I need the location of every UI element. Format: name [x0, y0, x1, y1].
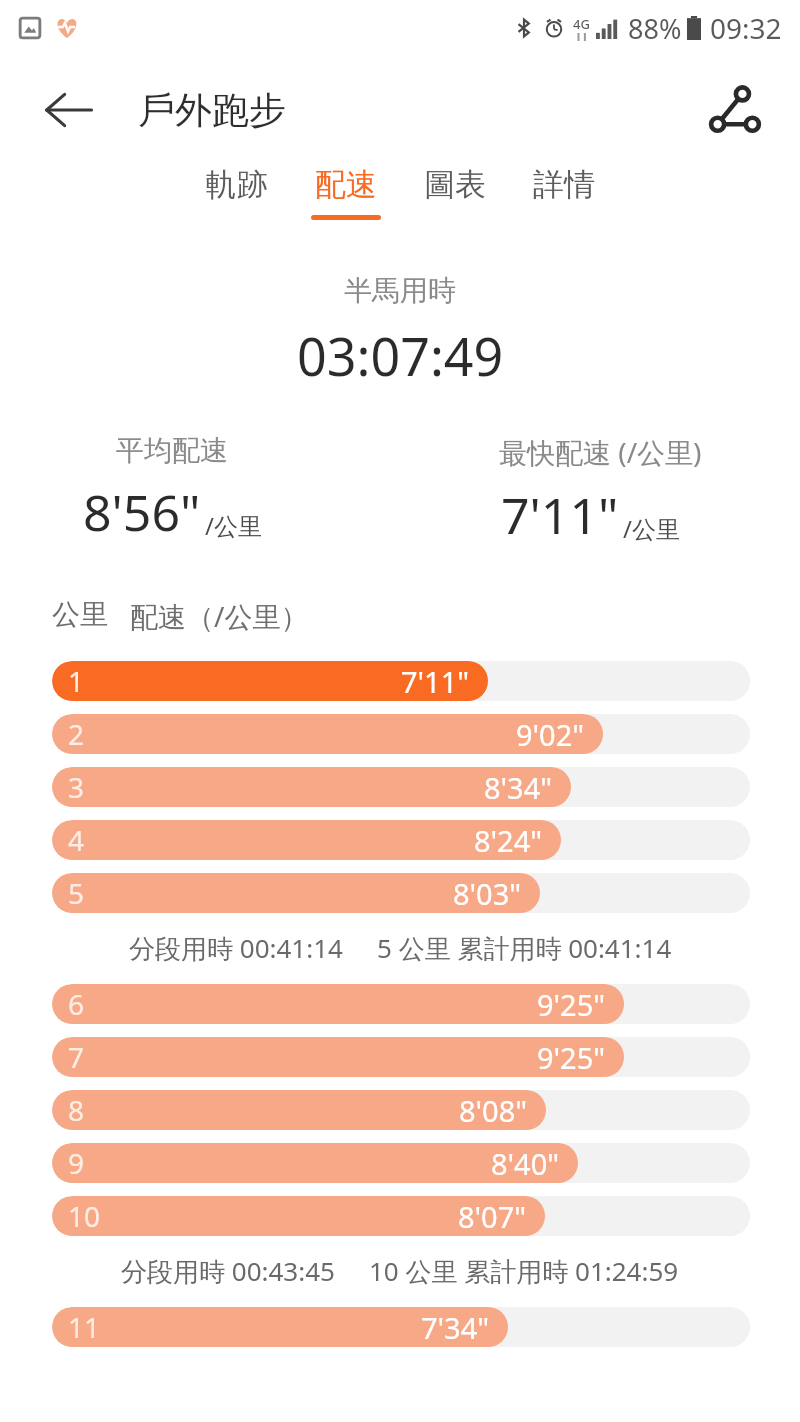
staticText: 5 公里 累計用時 00:41:14: [377, 930, 672, 966]
staticText: 圖表: [424, 165, 486, 204]
button[interactable]: Back: [40, 82, 96, 138]
staticText: 7'11": [401, 662, 470, 701]
button[interactable]: 4: [0, 813, 800, 866]
staticText: 配速: [315, 165, 377, 204]
staticText: 1: [68, 662, 85, 700]
staticText: 7: [68, 1038, 85, 1076]
staticText: 9'25": [537, 1038, 606, 1077]
button[interactable]: 1: [0, 654, 800, 707]
button[interactable]: 7: [0, 1030, 800, 1083]
button[interactable]: Share: [704, 79, 766, 141]
staticText: 8'07": [458, 1197, 527, 1236]
staticText: 10: [68, 1197, 101, 1235]
staticText: 半馬用時: [344, 273, 456, 308]
staticText: 8'40": [491, 1144, 560, 1183]
staticText: 8'56": [83, 478, 201, 546]
staticText: 5: [68, 874, 85, 912]
button[interactable]: 軌跡: [182, 165, 291, 215]
button[interactable]: 10: [0, 1189, 800, 1242]
staticText: 平均配速: [116, 433, 228, 468]
button[interactable]: 11: [0, 1300, 800, 1353]
staticText: 3: [68, 768, 85, 806]
staticText: 8'24": [474, 821, 543, 860]
staticText: 8'03": [453, 874, 522, 913]
staticText: 8'08": [459, 1091, 528, 1130]
staticText: /公里: [205, 509, 262, 542]
staticText: 9: [68, 1144, 85, 1182]
staticText: 2: [68, 715, 85, 753]
staticText: 6: [68, 985, 85, 1023]
staticText: 分段用時 00:43:45: [121, 1253, 335, 1289]
button[interactable]: 圖表: [400, 165, 509, 215]
button[interactable]: 5: [0, 866, 800, 919]
staticText: 軌跡: [206, 165, 268, 204]
staticText: 8'34": [484, 768, 553, 807]
staticText: 9'02": [516, 715, 585, 754]
button[interactable]: 配速: [291, 165, 400, 220]
button[interactable]: 3: [0, 760, 800, 813]
staticText: 分段用時 00:41:14: [129, 930, 343, 966]
staticText: 4G: [573, 15, 590, 33]
staticText: 8: [68, 1091, 85, 1129]
staticText: 戶外跑步: [138, 87, 286, 134]
staticText: 88%: [628, 10, 682, 47]
staticText: 09:32: [710, 9, 782, 47]
staticText: 7'34": [421, 1308, 490, 1347]
button[interactable]: 詳情: [509, 165, 618, 215]
staticText: /公里: [623, 512, 680, 545]
button[interactable]: 6: [0, 977, 800, 1030]
staticText: 公里: [52, 597, 108, 632]
staticText: 9'25": [537, 985, 606, 1024]
staticText: 11: [68, 1308, 101, 1346]
staticText: 03:07:49: [297, 320, 504, 391]
button[interactable]: 9: [0, 1136, 800, 1189]
staticText: 7'11": [501, 481, 619, 549]
staticText: 10 公里 累計用時 01:24:59: [369, 1253, 679, 1289]
staticText: 配速（/公里）: [130, 597, 309, 635]
staticText: 4: [68, 821, 85, 859]
staticText: 詳情: [533, 165, 595, 204]
button[interactable]: 2: [0, 707, 800, 760]
button[interactable]: 8: [0, 1083, 800, 1136]
staticText: 最快配速 (/公里): [499, 433, 702, 471]
